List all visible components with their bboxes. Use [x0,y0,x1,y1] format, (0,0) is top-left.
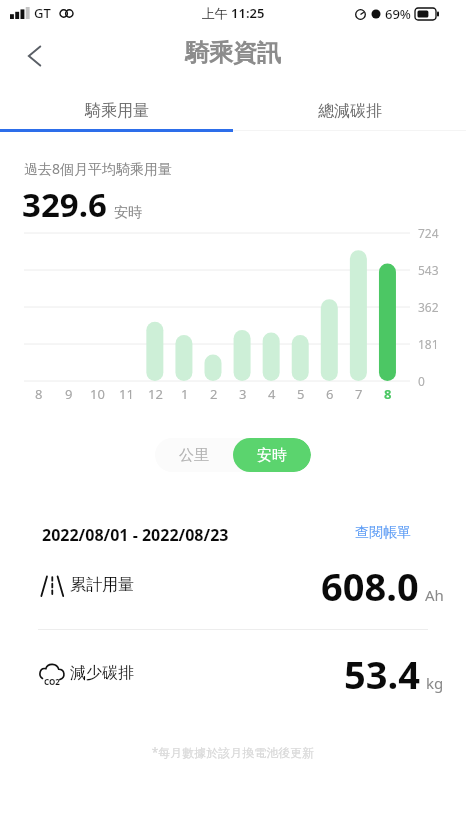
staticText: 608.0 [321,560,419,612]
staticText: 8 [384,385,392,403]
staticText: 53.4 [344,648,420,700]
staticText: 過去8個月平均騎乘用量 [24,159,173,178]
staticText: 公里 [179,446,209,465]
staticText: 5 [297,385,305,403]
button[interactable]: 公里 [155,438,233,472]
staticText: GT [34,4,51,22]
button[interactable]: 騎乘用量 [0,92,233,130]
staticText: 2 [210,385,218,403]
staticText: 安時 [257,446,287,465]
staticText: 724 [418,225,439,241]
staticText: *每月數據於該月換電池後更新 [0,744,466,760]
button[interactable]: 查閱帳單 [355,524,411,542]
staticText: 騎乘資訊 [0,38,466,68]
staticText: 3 [239,385,247,403]
button[interactable]: 總減碳排 [233,92,466,130]
staticText: 1 [181,385,189,403]
button[interactable]: Back [12,32,60,80]
staticText: 查閱帳單 [355,524,411,542]
staticText: 10 [90,385,105,403]
staticText: 0 [418,373,425,389]
staticText: 4 [268,385,276,403]
staticText: 6 [326,385,334,403]
staticText: 減少碳排 [70,663,134,683]
staticText: 上午 11:25 [0,4,466,22]
staticText: 329.6 [22,182,107,227]
staticText: 2022/08/01 - 2022/08/23 [42,524,229,546]
staticText: 543 [418,262,439,278]
staticText: 181 [418,336,439,352]
staticText: 8 [35,385,43,403]
staticText: kg [426,673,444,693]
button[interactable]: 安時 [233,438,311,472]
staticText: 騎乘用量 [85,101,149,121]
staticText: CO2 [44,676,60,687]
staticText: 7 [355,385,363,403]
staticText: 9 [65,385,73,403]
staticText: 12 [148,385,163,403]
staticText: 累計用量 [70,575,134,595]
staticText: Ah [425,585,444,605]
staticText: 總減碳排 [318,101,382,121]
staticText: 69% [385,5,411,23]
staticText: 安時 [114,204,142,222]
staticText: 11 [119,385,134,403]
staticText: 362 [418,299,439,315]
